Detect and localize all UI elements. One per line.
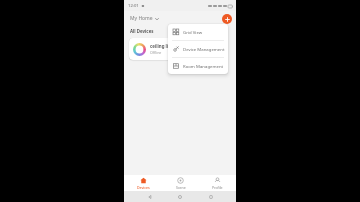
button[interactable]: Devices xyxy=(124,175,162,191)
staticText: Room Management xyxy=(183,63,224,69)
staticText: Grid View xyxy=(183,29,203,35)
staticText: My Home xyxy=(130,15,153,22)
button[interactable]: Room Management xyxy=(168,58,228,74)
button[interactable]: Scene xyxy=(162,175,199,191)
staticText: ceiling light xyxy=(150,43,176,49)
button[interactable]: Grid View xyxy=(168,24,228,40)
staticText: Offline xyxy=(150,50,162,55)
button[interactable]: Add device xyxy=(222,14,232,24)
button[interactable]: Device Management xyxy=(168,41,228,57)
button[interactable]: Profile xyxy=(199,175,236,191)
button[interactable]: My Home xyxy=(129,14,160,23)
staticText: All Devices xyxy=(130,28,154,34)
button[interactable]: Back xyxy=(145,192,155,202)
staticText: Profile xyxy=(212,185,223,190)
button[interactable]: Home xyxy=(175,192,185,202)
button[interactable]: Recent apps xyxy=(206,192,216,202)
button[interactable]: ceiling light xyxy=(129,38,213,60)
staticText: Device Management xyxy=(183,46,225,52)
staticText: 12:01 xyxy=(128,3,139,9)
staticText: Devices xyxy=(137,185,150,190)
staticText: Scene xyxy=(176,185,186,190)
button[interactable]: All Devices xyxy=(129,27,155,35)
